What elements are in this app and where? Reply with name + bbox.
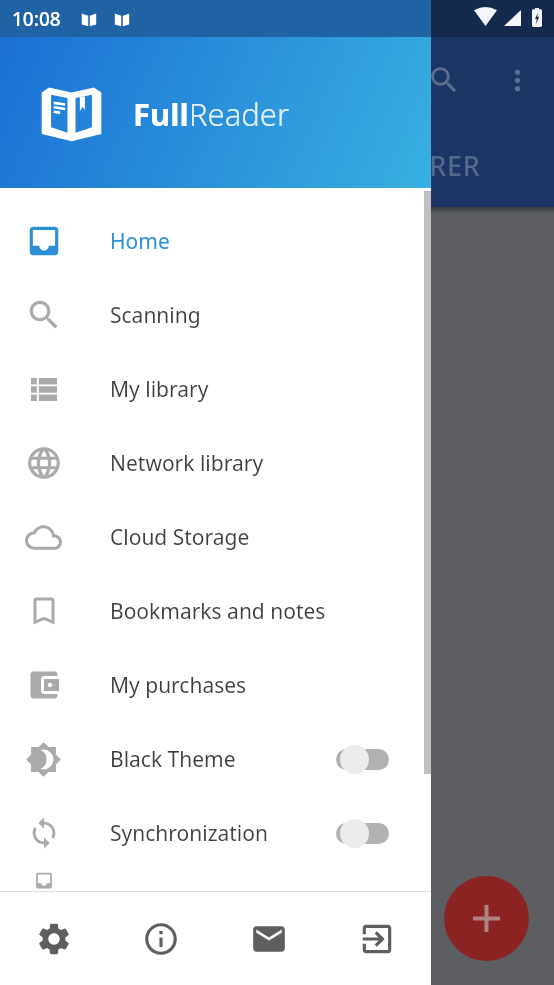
staticText: Cloud Storage	[110, 523, 250, 552]
staticText: FILE EXPLORER	[279, 147, 481, 184]
staticText: Reader	[189, 93, 290, 135]
button[interactable]: My purchases	[0, 648, 431, 722]
staticText: My library	[110, 375, 209, 404]
button[interactable]	[0, 870, 431, 891]
staticText: Synchronization	[110, 819, 268, 848]
button[interactable]: Synchronization	[0, 796, 431, 870]
button[interactable]: Bookmarks and notes	[0, 574, 431, 648]
staticText: My purchases	[110, 671, 247, 700]
button[interactable]: More options	[489, 52, 545, 108]
button[interactable]: Settings	[0, 892, 107, 985]
staticText: Scanning	[110, 301, 201, 330]
staticText: 10:08	[12, 6, 61, 32]
button[interactable]: Scanning	[0, 278, 431, 352]
staticText: Home	[110, 227, 170, 256]
button[interactable]: Add	[444, 876, 529, 961]
button[interactable]: About	[107, 892, 215, 985]
button[interactable]: Exit	[323, 892, 431, 985]
button[interactable]: Search	[416, 52, 472, 108]
button[interactable]: Home	[0, 204, 431, 278]
staticText: Black Theme	[110, 745, 236, 774]
button[interactable]	[327, 741, 389, 777]
button[interactable]: My library	[0, 352, 431, 426]
button[interactable]: Feedback	[215, 892, 323, 985]
button[interactable]	[327, 815, 389, 851]
button[interactable]: Network library	[0, 426, 431, 500]
button[interactable]: Black Theme	[0, 722, 431, 796]
staticText: Bookmarks and notes	[110, 597, 326, 626]
staticText: Full	[133, 93, 189, 135]
button[interactable]: Cloud Storage	[0, 500, 431, 574]
staticText: Network library	[110, 449, 264, 478]
